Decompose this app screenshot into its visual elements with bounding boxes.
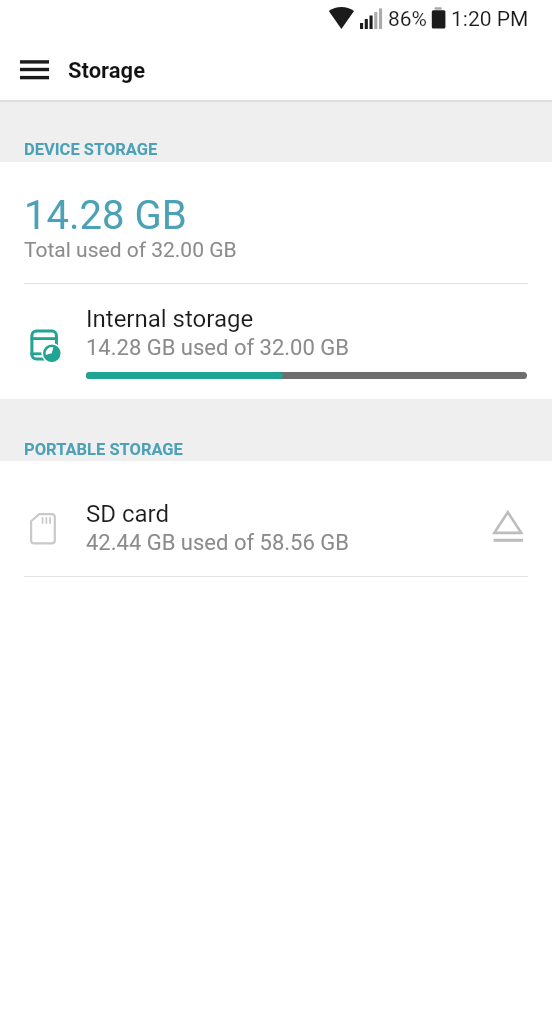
staticText: 86% bbox=[388, 7, 427, 32]
button[interactable] bbox=[480, 498, 536, 554]
staticText: 1:20 PM bbox=[451, 7, 529, 32]
staticText: 42.44 GB used of 58.56 GB bbox=[86, 530, 349, 556]
staticText: 14.28 GB used of 32.00 GB bbox=[86, 335, 349, 361]
staticText: 14.28 GB bbox=[24, 192, 187, 239]
button[interactable]: Internal storage bbox=[0, 288, 552, 392]
staticText: PORTABLE STORAGE bbox=[24, 440, 183, 459]
staticText: Internal storage bbox=[86, 305, 254, 333]
button[interactable] bbox=[6, 47, 62, 93]
button[interactable]: SD card bbox=[0, 461, 552, 576]
staticText: Total used of 32.00 GB bbox=[24, 238, 237, 263]
staticText: Storage bbox=[68, 58, 146, 84]
staticText: DEVICE STORAGE bbox=[24, 140, 158, 159]
staticText: SD card bbox=[86, 500, 170, 528]
